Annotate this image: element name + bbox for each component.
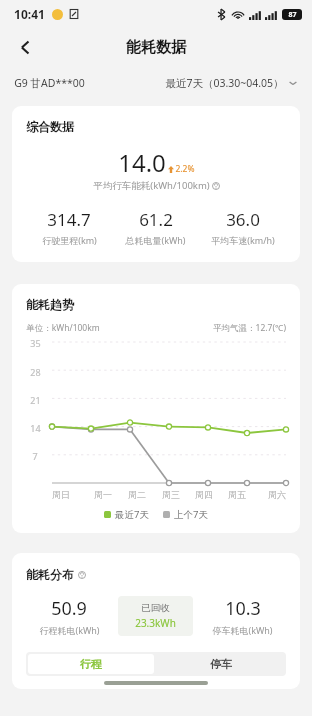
- staticText: 能耗数据: [126, 38, 186, 57]
- staticText: 50.9: [51, 596, 87, 621]
- staticText: 停车耗电(kWh): [212, 624, 273, 636]
- staticText: 周日: [52, 489, 70, 500]
- staticText: 平均行车能耗(kWh/100km): [93, 179, 210, 192]
- staticText: 2.2%: [175, 163, 195, 175]
- staticText: 周六: [268, 489, 286, 500]
- staticText: 行程耗电(kWh): [39, 624, 100, 636]
- button[interactable]: 停车: [156, 652, 286, 676]
- staticText: 28: [30, 366, 41, 378]
- staticText: 最近7天: [115, 508, 149, 521]
- staticText: 61.2: [139, 208, 173, 231]
- staticText: 36.0: [226, 208, 260, 231]
- staticText: 14.0: [118, 146, 166, 179]
- button[interactable]: 最近7天（03.30~04.05）: [165, 72, 298, 94]
- staticText: 停车: [210, 657, 232, 671]
- staticText: 综合数据: [26, 119, 74, 134]
- staticText: 上个7天: [174, 508, 208, 521]
- staticText: 平均车速(km/h): [211, 234, 275, 246]
- staticText: 行驶里程(km): [42, 234, 97, 246]
- staticText: 周二: [128, 489, 146, 500]
- staticText: 87: [288, 10, 297, 20]
- button[interactable]: 行程: [28, 654, 154, 674]
- staticText: 314.7: [47, 208, 91, 231]
- button[interactable]: Back: [8, 30, 42, 64]
- staticText: 行程: [80, 657, 102, 671]
- staticText: 21: [30, 394, 41, 406]
- staticText: 周三: [162, 489, 180, 500]
- staticText: 能耗趋势: [26, 297, 74, 312]
- staticText: 最近7天（03.30~04.05）: [165, 76, 284, 90]
- staticText: 周四: [195, 489, 213, 500]
- staticText: 7: [32, 450, 38, 462]
- staticText: 周一: [94, 489, 112, 500]
- staticText: 已回收: [141, 602, 170, 614]
- staticText: 平均气温：12.7(℃): [213, 322, 286, 334]
- staticText: G9 甘AD***00: [14, 76, 85, 90]
- staticText: 10:41: [14, 6, 45, 22]
- staticText: 23.3kWh: [135, 616, 176, 630]
- staticText: 10.3: [225, 596, 261, 621]
- staticText: 单位：kWh/100km: [26, 322, 100, 334]
- staticText: 周五: [228, 489, 246, 500]
- staticText: 总耗电量(kWh): [125, 234, 186, 246]
- button[interactable]: G9 甘AD***00: [14, 72, 85, 94]
- staticText: 能耗分布: [26, 567, 74, 582]
- staticText: 35: [30, 337, 41, 349]
- staticText: 14: [30, 422, 41, 434]
